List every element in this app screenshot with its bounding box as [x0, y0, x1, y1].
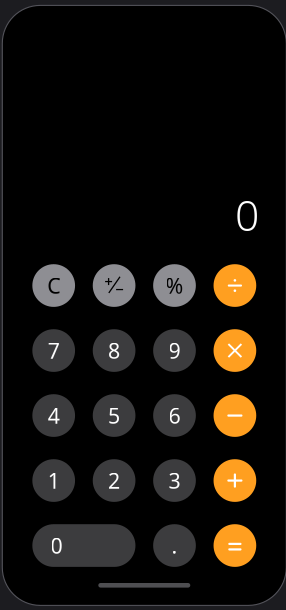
- button[interactable]: 2: [93, 459, 135, 502]
- staticText: C: [47, 271, 60, 300]
- button[interactable]: 4: [32, 394, 75, 437]
- button[interactable]: Multiply: [214, 329, 256, 372]
- staticText: %: [165, 271, 183, 300]
- button[interactable]: 9: [153, 329, 196, 372]
- staticText: 7: [48, 336, 60, 365]
- staticText: 5: [108, 401, 120, 430]
- button[interactable]: 7: [32, 329, 75, 372]
- staticText: 9: [168, 336, 180, 365]
- staticText: 8: [108, 336, 120, 365]
- staticText: 1: [48, 466, 60, 495]
- button[interactable]: C: [32, 264, 75, 307]
- button[interactable]: Toggle sign: [93, 264, 135, 307]
- staticText: 0: [235, 186, 259, 243]
- button[interactable]: 5: [93, 394, 135, 437]
- button[interactable]: Equals: [214, 524, 256, 567]
- button[interactable]: .: [153, 524, 196, 567]
- button[interactable]: 0: [32, 524, 135, 567]
- button[interactable]: 1: [32, 459, 75, 502]
- button[interactable]: Subtract: [214, 394, 256, 437]
- button[interactable]: Divide: [214, 264, 256, 307]
- button[interactable]: Add: [214, 459, 256, 502]
- staticText: 6: [168, 401, 180, 430]
- staticText: 0: [51, 531, 63, 560]
- staticText: 2: [108, 466, 120, 495]
- button[interactable]: 3: [153, 459, 196, 502]
- button[interactable]: 6: [153, 394, 196, 437]
- staticText: .: [171, 531, 177, 560]
- staticText: 4: [48, 401, 60, 430]
- button[interactable]: %: [153, 264, 196, 307]
- button[interactable]: 8: [93, 329, 135, 372]
- staticText: 3: [168, 466, 180, 495]
